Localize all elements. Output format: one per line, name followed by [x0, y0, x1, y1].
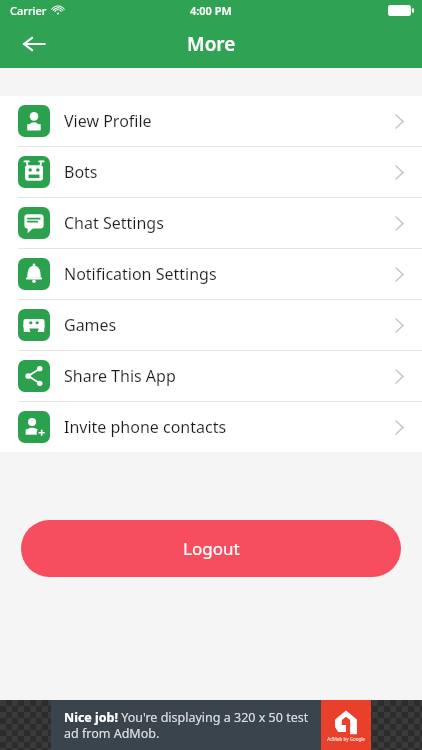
button[interactable]: Chat Settings — [0, 198, 422, 248]
staticText: More — [187, 31, 236, 57]
staticText: AdMob by Google — [327, 736, 365, 742]
staticText: Games — [64, 314, 117, 336]
staticText: 4:00 PM — [190, 3, 232, 18]
button[interactable]: Bots — [0, 147, 422, 197]
button[interactable]: Invite phone contacts — [0, 402, 422, 452]
staticText: Logout — [183, 537, 240, 560]
staticText: View Profile — [64, 110, 152, 132]
staticText: Nice job! You're displaying a 320 x 50 t… — [64, 709, 315, 741]
staticText: Chat Settings — [64, 212, 164, 234]
staticText: Bots — [64, 161, 98, 183]
staticText: Share This App — [64, 365, 176, 387]
button[interactable]: Games — [0, 300, 422, 350]
button[interactable]: View Profile — [0, 96, 422, 146]
button[interactable]: Share This App — [0, 351, 422, 401]
button[interactable]: Advertisement — [51, 700, 371, 750]
button[interactable]: Notification Settings — [0, 249, 422, 299]
button[interactable]: Logout — [21, 520, 401, 577]
staticText: Invite phone contacts — [64, 416, 227, 438]
button[interactable]: Back — [12, 22, 56, 66]
staticText: Notification Settings — [64, 263, 217, 285]
staticText: Carrier — [10, 3, 47, 18]
